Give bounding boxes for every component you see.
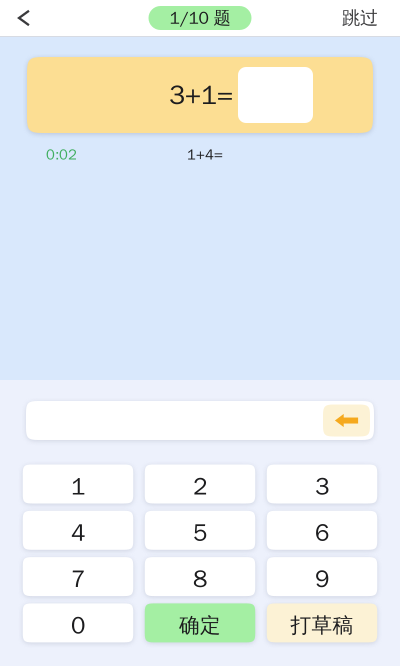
staticText: 1/10 题 bbox=[169, 7, 230, 29]
button[interactable]: 8 bbox=[145, 557, 255, 596]
button[interactable]: 2 bbox=[145, 464, 255, 503]
staticText: 跳过 bbox=[342, 7, 378, 29]
staticText: 确定 bbox=[179, 612, 221, 638]
button[interactable]: 3 bbox=[267, 464, 377, 503]
staticText: 4 bbox=[71, 518, 85, 548]
button[interactable]: 打草稿 bbox=[267, 603, 377, 642]
button[interactable]: 6 bbox=[267, 511, 377, 550]
staticText: 0 bbox=[71, 610, 85, 640]
staticText: 3+1= bbox=[169, 78, 233, 112]
button[interactable]: 0 bbox=[23, 603, 133, 642]
button[interactable]: 5 bbox=[145, 511, 255, 550]
staticText: 8 bbox=[193, 564, 207, 594]
staticText: 1+4= bbox=[187, 145, 223, 164]
staticText: 1 bbox=[71, 471, 85, 502]
button[interactable]: 跳过 bbox=[342, 0, 400, 36]
button[interactable]: Back bbox=[0, 0, 48, 36]
button[interactable]: 确定 bbox=[145, 603, 255, 642]
button[interactable]: 9 bbox=[267, 557, 377, 596]
button[interactable]: 1 bbox=[23, 464, 133, 503]
button[interactable]: Backspace bbox=[323, 404, 370, 436]
staticText: 5 bbox=[193, 518, 207, 548]
staticText: 9 bbox=[315, 564, 329, 594]
staticText: 打草稿 bbox=[290, 612, 353, 638]
staticText: 0:02 bbox=[46, 145, 77, 164]
button[interactable]: 7 bbox=[23, 557, 133, 596]
staticText: 7 bbox=[71, 564, 85, 594]
button[interactable]: 4 bbox=[23, 511, 133, 550]
staticText: 2 bbox=[193, 471, 207, 502]
staticText: 6 bbox=[315, 518, 329, 548]
staticText: 3 bbox=[315, 471, 329, 502]
